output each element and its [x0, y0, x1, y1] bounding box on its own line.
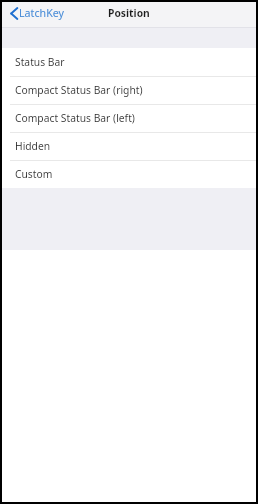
button[interactable]: Back to LatchKey: [2, 2, 71, 27]
staticText: Position: [108, 6, 150, 20]
button[interactable]: Compact Status Bar (right): [2, 76, 256, 104]
staticText: Compact Status Bar (left): [15, 111, 135, 125]
button[interactable]: Status Bar: [2, 48, 256, 76]
staticText: Compact Status Bar (right): [15, 83, 143, 97]
staticText: Hidden: [15, 139, 51, 153]
button[interactable]: Compact Status Bar (left): [2, 104, 256, 132]
button[interactable]: Custom: [2, 160, 256, 188]
staticText: Status Bar: [15, 55, 65, 69]
button[interactable]: Hidden: [2, 132, 256, 160]
staticText: LatchKey: [19, 6, 65, 21]
staticText: Custom: [15, 167, 53, 181]
